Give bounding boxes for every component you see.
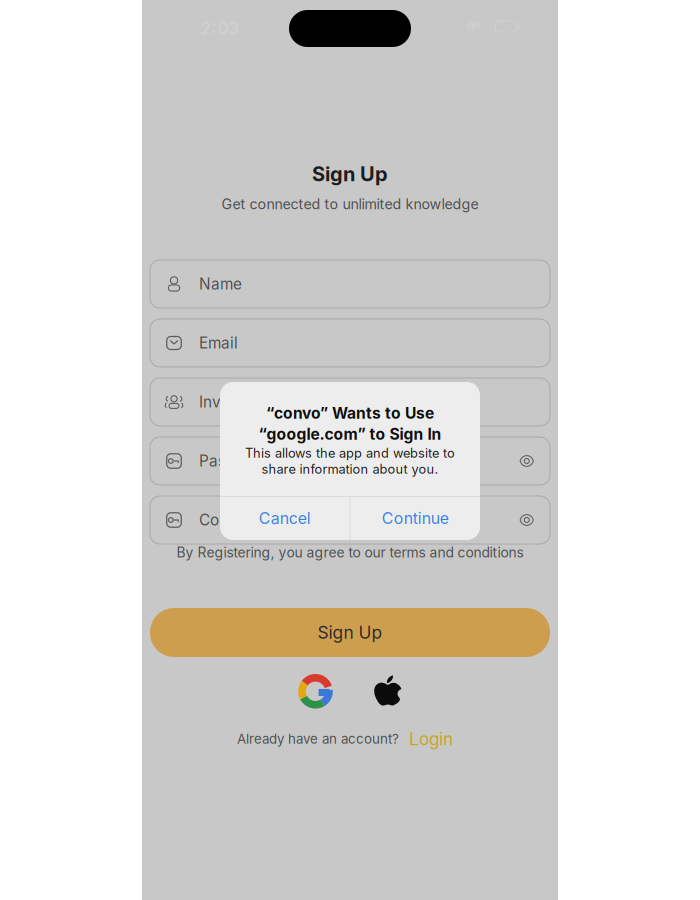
staticText: Already have an account? <box>237 731 399 747</box>
staticText: Continue <box>382 509 449 528</box>
button[interactable]: Continue <box>350 497 480 540</box>
button[interactable]: Cancel <box>220 497 350 540</box>
button[interactable]: Login <box>409 729 453 749</box>
staticText: Confirm Password <box>199 511 332 529</box>
staticText: By Registering, you agree to our terms a… <box>176 544 523 561</box>
button[interactable]: Password <box>150 437 550 485</box>
staticText: Email <box>199 334 238 352</box>
staticText: Invite code <box>199 393 279 411</box>
staticText: Get connected to unlimited knowledge <box>221 195 478 213</box>
button[interactable]: Invite code <box>150 378 550 426</box>
staticText: Name <box>199 275 242 293</box>
staticText: share information about you. <box>261 461 438 477</box>
button[interactable]: Sign Up <box>150 608 550 657</box>
staticText: Sign Up <box>312 162 388 186</box>
staticText: This allows the app and website to <box>245 445 455 461</box>
staticText: “google.com” to Sign In <box>258 425 441 444</box>
button[interactable]: Name <box>150 260 550 308</box>
staticText: “convo” Wants to Use <box>266 404 434 423</box>
staticText: Password <box>199 452 270 470</box>
button[interactable]: Sign up with Apple <box>374 675 402 707</box>
staticText: Login <box>409 729 453 749</box>
staticText: Sign Up <box>317 622 382 643</box>
staticText: Cancel <box>259 509 311 528</box>
button[interactable]: Sign up with Google <box>298 674 333 709</box>
button[interactable]: Confirm Password <box>150 496 550 544</box>
button[interactable]: Email <box>150 319 550 367</box>
